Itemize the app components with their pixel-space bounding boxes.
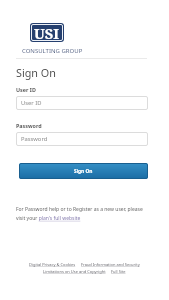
- button[interactable]: Limitations on Use and Copyright: [43, 269, 106, 274]
- button[interactable]: For Password help or to Register as a ne…: [16, 206, 149, 222]
- staticText: USI: [34, 23, 60, 40]
- staticText: Password: [21, 135, 48, 143]
- button[interactable]: Password: [16, 132, 148, 146]
- staticText: User ID: [21, 99, 42, 107]
- staticText: CONSULTING GROUP: [22, 47, 83, 55]
- button[interactable]: Sign On: [19, 163, 148, 179]
- staticText: Sign On: [16, 65, 56, 80]
- staticText: User ID: [16, 86, 36, 93]
- staticText: Sign On: [74, 168, 93, 175]
- button[interactable]: Full Site: [111, 269, 126, 274]
- staticText: Password: [16, 122, 42, 129]
- button[interactable]: User ID: [16, 96, 148, 110]
- staticText: For Password help or to Register as a ne…: [16, 206, 149, 222]
- button[interactable]: Fraud Information and Security: [81, 262, 140, 267]
- button[interactable]: Digital Privacy & Cookies: [29, 262, 76, 267]
- other: USI Consulting Group logo: [31, 24, 63, 41]
